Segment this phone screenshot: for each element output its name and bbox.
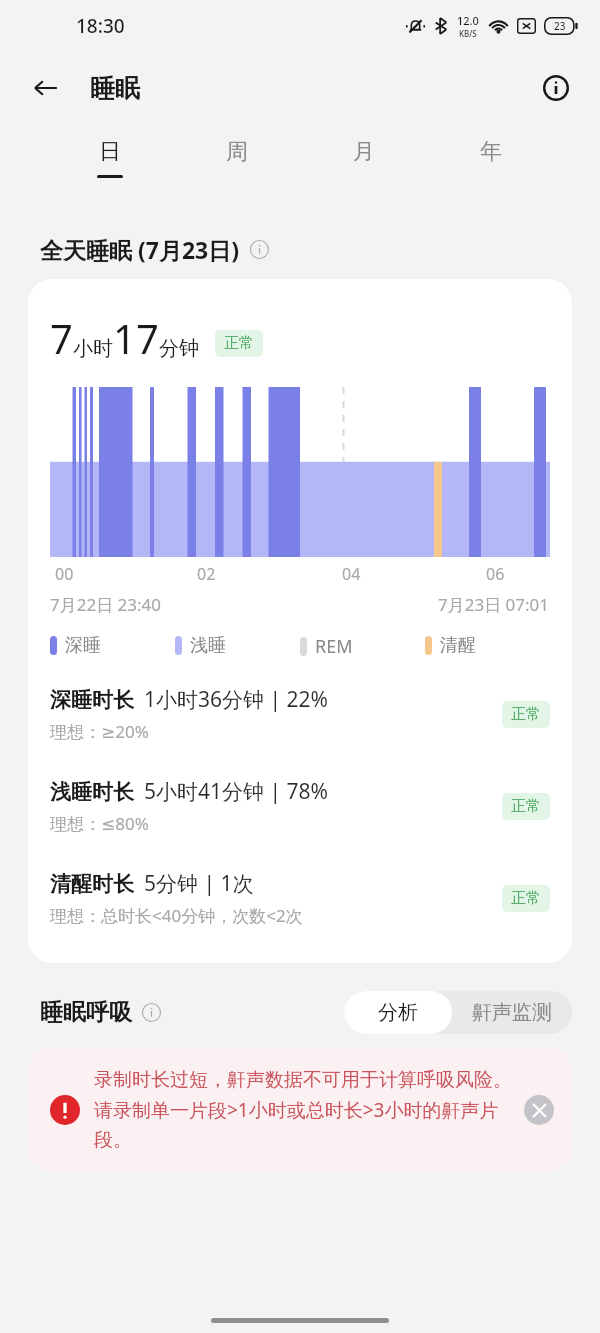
staticText: 清醒时长 — [50, 871, 134, 897]
button[interactable]: 睡眠呼吸 — [40, 998, 161, 1027]
staticText: 浅睡 — [190, 634, 226, 657]
staticText: 18:30 — [76, 13, 125, 39]
staticText: 5分钟 | 1次 — [144, 869, 254, 898]
button[interactable]: 深睡 — [50, 634, 175, 657]
staticText: 理想：≤80% — [50, 812, 149, 835]
button[interactable]: 清醒 — [425, 634, 550, 657]
button[interactable]: 深睡时长 — [50, 685, 550, 743]
staticText: 正常 — [511, 705, 541, 724]
button[interactable]: 周 — [173, 124, 300, 200]
staticText: 周 — [226, 138, 248, 166]
button[interactable]: 全天睡眠 (7月23日) — [40, 234, 600, 265]
button[interactable]: 关闭 — [524, 1095, 554, 1125]
staticText: 深睡时长 — [50, 687, 134, 713]
button[interactable]: 鼾声监测 — [452, 991, 572, 1034]
staticText: 浅睡时长 — [50, 779, 134, 805]
staticText: 分析 — [378, 1000, 418, 1025]
staticText: 小时 — [73, 336, 113, 361]
staticText: 理想：≥20% — [50, 720, 149, 743]
staticText: 17 — [113, 311, 159, 365]
staticText: 月 — [353, 138, 375, 166]
button[interactable]: 年 — [427, 124, 554, 200]
button[interactable]: 返回 — [22, 64, 70, 112]
staticText: 睡眠呼吸 — [40, 998, 132, 1027]
staticText: 分钟 — [159, 336, 199, 361]
staticText: KB/S — [459, 28, 477, 39]
staticText: 正常 — [511, 797, 541, 816]
staticText: 04 — [342, 563, 361, 585]
staticText: 正常 — [224, 334, 254, 353]
staticText: 06 — [486, 563, 505, 585]
button[interactable]: 信息 — [534, 66, 578, 110]
button[interactable]: 分析 — [344, 991, 452, 1034]
button[interactable]: 清醒时长 — [50, 869, 550, 927]
staticText: 7 — [50, 311, 73, 365]
staticText: 日 — [99, 138, 121, 166]
staticText: 5小时41分钟 | 78% — [144, 777, 329, 806]
button[interactable]: 浅睡 — [175, 634, 300, 657]
button[interactable]: 月 — [300, 124, 427, 200]
staticText: 深睡 — [65, 634, 101, 657]
staticText: 02 — [197, 563, 216, 585]
staticText: 7月23日 07:01 — [438, 593, 550, 616]
staticText: 全天睡眠 (7月23日) — [40, 234, 240, 265]
button[interactable]: REM — [300, 634, 425, 659]
staticText: 1小时36分钟 | 22% — [144, 685, 329, 714]
staticText: 睡眠 — [90, 73, 140, 104]
staticText: 年 — [480, 138, 502, 166]
staticText: 23 — [554, 19, 566, 33]
staticText: 录制时长过短，鼾声数据不可用于计算呼吸风险。请录制单一片段>1小时或总时长>3小… — [94, 1068, 514, 1151]
staticText: REM — [315, 634, 353, 659]
staticText: 清醒 — [440, 634, 476, 657]
staticText: 7月22日 23:40 — [50, 593, 162, 616]
staticText: 理想：总时长<40分钟，次数<2次 — [50, 904, 303, 927]
staticText: 00 — [55, 563, 74, 585]
staticText: 12.0 — [457, 13, 479, 28]
staticText: 鼾声监测 — [472, 1000, 552, 1025]
button[interactable]: 日 — [46, 124, 173, 200]
staticText: 正常 — [511, 889, 541, 908]
button[interactable]: 浅睡时长 — [50, 777, 550, 835]
